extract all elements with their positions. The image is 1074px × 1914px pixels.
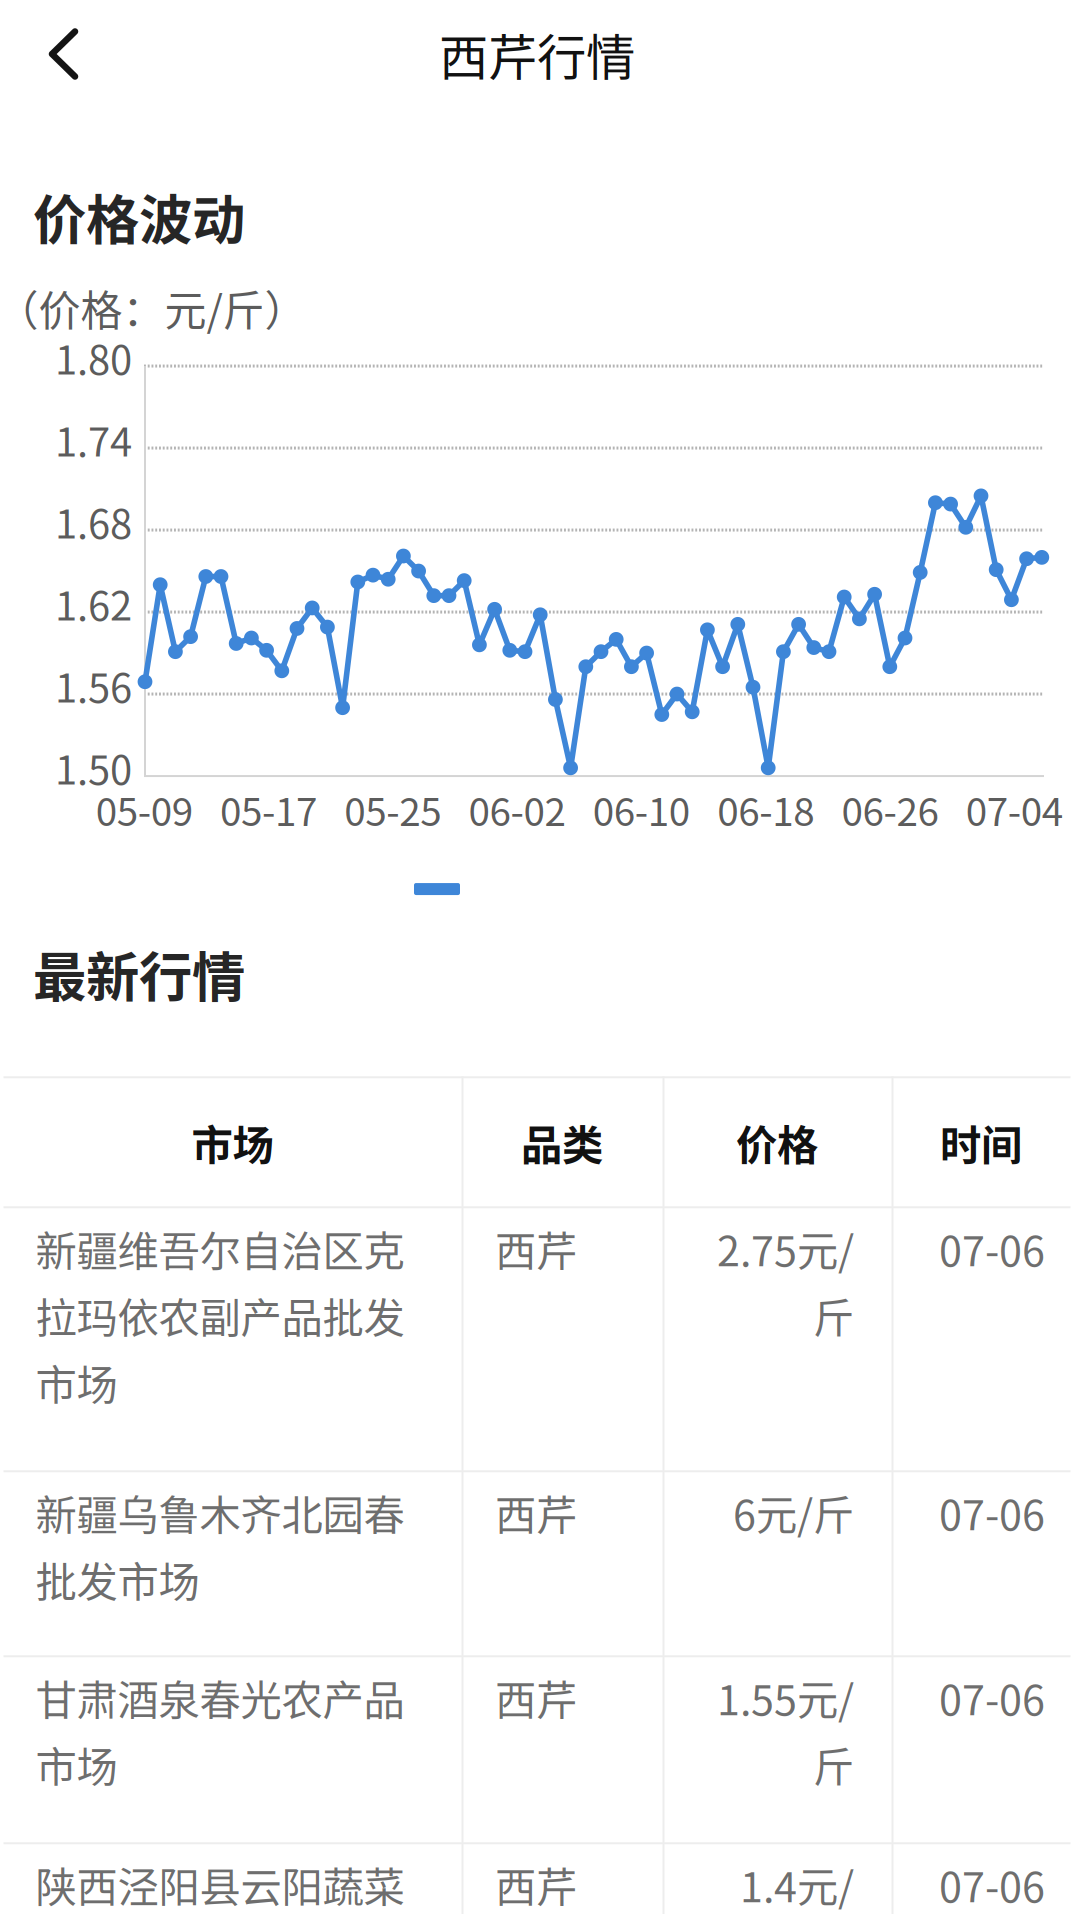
staticText: 1.55元/斤 [716,1667,853,1794]
staticText: 西芹 [495,1667,577,1727]
staticText: 06-18 [717,781,814,837]
staticText: 西芹 [495,1218,577,1278]
staticText: 西芹 [495,1854,577,1914]
staticText: （价格：元/斤） [0,277,306,338]
staticText: 1.56 [55,656,132,714]
staticText: 1.62 [55,574,132,632]
staticText: 06-26 [841,781,938,837]
staticText: 西芹行情 [439,18,635,90]
button[interactable]: 新疆维吾尔自治区克拉玛依农副产品批发市场 [3,1208,1070,1470]
staticText: 1.50 [55,738,132,796]
staticText: 07-06 [939,1482,1045,1542]
staticText: 时间 [940,1112,1022,1172]
staticText: 06-02 [468,781,565,837]
staticText: 05-25 [344,781,441,837]
staticText: 1.68 [55,492,132,550]
staticText: 新疆维吾尔自治区克拉玛依农副产品批发市场 [35,1218,404,1412]
staticText: 陕西泾阳县云阳蔬菜市场 [35,1854,404,1914]
staticText: 07-04 [966,781,1063,837]
button[interactable]: 陕西泾阳县云阳蔬菜市场 [3,1844,1070,1914]
staticText: 1.74 [55,410,132,468]
staticText: 品类 [521,1112,603,1172]
staticText: 新疆乌鲁木齐北园春批发市场 [35,1482,404,1609]
staticText: 07-06 [939,1218,1045,1278]
staticText: 07-06 [939,1854,1045,1914]
button[interactable]: Back [0,3,106,104]
staticText: 05-17 [220,781,317,837]
staticText: 2.75元/斤 [716,1218,853,1345]
staticText: 6元/斤 [732,1482,853,1542]
button[interactable]: 新疆乌鲁木齐北园春批发市场 [3,1472,1070,1655]
staticText: 价格 [736,1112,818,1172]
staticText: 1.4元/斤 [739,1854,853,1914]
staticText: 西芹 [495,1482,577,1542]
staticText: 市场 [191,1112,273,1172]
staticText: 最新行情 [33,935,245,1012]
staticText: 07-06 [939,1667,1045,1727]
staticText: 05-09 [96,781,193,837]
button[interactable]: Page 1 [394,861,480,917]
staticText: 甘肃酒泉春光农产品市场 [35,1667,404,1794]
staticText: 1.80 [55,328,132,386]
button[interactable]: 甘肃酒泉春光农产品市场 [3,1657,1070,1842]
staticText: 06-10 [593,781,690,837]
staticText: 价格波动 [33,178,245,255]
